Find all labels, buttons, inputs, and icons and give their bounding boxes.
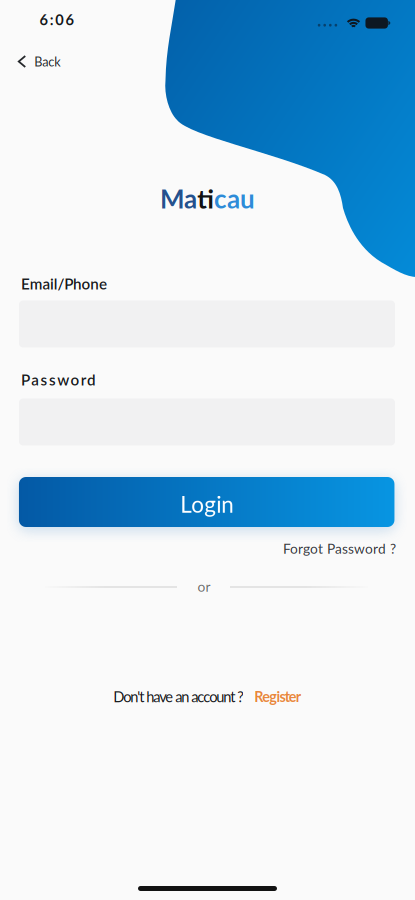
staticText: ti [197,183,214,214]
button[interactable]: Back [14,48,65,75]
staticText: Don't have an account ? [113,688,244,705]
staticText: Forgot Password ? [283,540,396,557]
staticText: 6:06 [40,11,74,28]
staticText: Email/Phone [21,274,107,293]
button[interactable]: Register [254,688,301,705]
staticText: Back [34,54,60,69]
staticText: Register [254,688,301,705]
staticText: Password [21,370,96,389]
staticText: cau [214,183,255,214]
button[interactable]: Forgot Password ? [283,540,396,557]
staticText: Ma [160,183,197,214]
button[interactable]: Login [19,477,394,527]
staticText: or [197,578,210,595]
staticText: Login [180,491,233,517]
